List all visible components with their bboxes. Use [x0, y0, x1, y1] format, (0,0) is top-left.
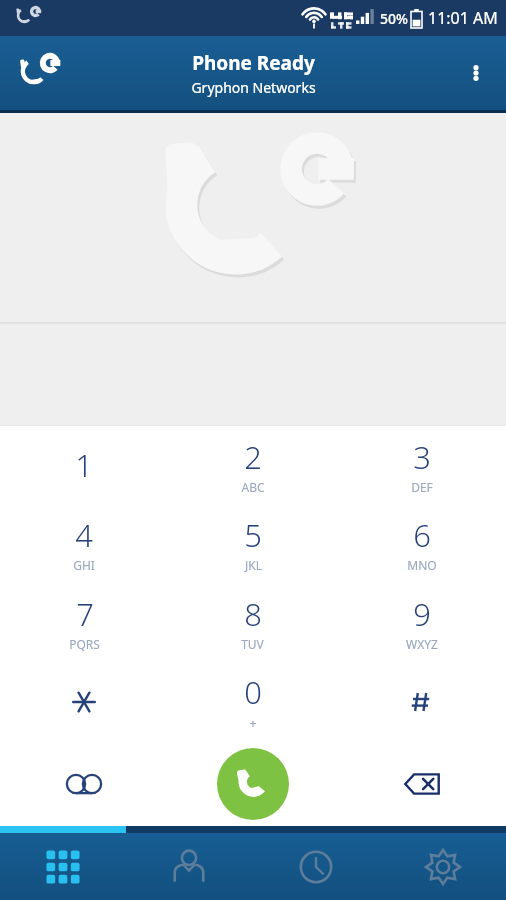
staticText: 1: [75, 444, 93, 486]
staticText: Gryphon Networks: [191, 78, 316, 97]
button[interactable]: Dial 7: [0, 583, 168, 662]
staticText: 2: [244, 436, 262, 478]
button[interactable]: Dial 8: [168, 583, 337, 662]
staticText: PQRS: [69, 636, 100, 652]
button[interactable]: Recents: [252, 833, 379, 900]
staticText: 0: [244, 671, 262, 713]
staticText: ABC: [241, 479, 265, 495]
button[interactable]: Gryphon: [8, 45, 64, 101]
staticText: Phone Ready: [192, 50, 315, 76]
button[interactable]: Voicemail: [0, 741, 168, 826]
button[interactable]: Dial 0: [168, 662, 337, 741]
staticText: 6: [413, 514, 431, 556]
staticText: 5: [244, 514, 262, 556]
staticText: 3: [413, 436, 431, 478]
button[interactable]: Settings: [379, 833, 506, 900]
button[interactable]: Dial 5: [168, 504, 337, 583]
staticText: 50%: [380, 9, 408, 28]
button[interactable]: Backspace: [337, 741, 506, 826]
button[interactable]: Dial *: [0, 662, 168, 741]
button[interactable]: Dial 1: [0, 426, 168, 504]
staticText: +: [249, 714, 257, 732]
staticText: GHI: [73, 557, 95, 573]
staticText: MNO: [407, 557, 437, 573]
staticText: DEF: [411, 479, 433, 495]
staticText: 7: [76, 593, 94, 635]
button[interactable]: Dial 9: [337, 583, 506, 662]
staticText: JKL: [245, 557, 262, 573]
button[interactable]: More options: [452, 49, 500, 97]
staticText: WXYZ: [406, 636, 438, 652]
button[interactable]: Dial 3: [337, 426, 506, 504]
button[interactable]: Dial 6: [337, 504, 506, 583]
staticText: TUV: [241, 636, 264, 652]
staticText: 8: [244, 593, 262, 635]
button[interactable]: Dial 2: [168, 426, 337, 504]
button[interactable]: Contacts: [126, 833, 252, 900]
button[interactable]: Call: [217, 748, 289, 820]
staticText: 9: [413, 593, 431, 635]
button[interactable]: Dialpad: [0, 833, 126, 900]
staticText: 11:01 AM: [428, 7, 498, 29]
staticText: 4: [75, 514, 93, 556]
button[interactable]: Dial #: [337, 662, 506, 741]
button[interactable]: Dial 4: [0, 504, 168, 583]
